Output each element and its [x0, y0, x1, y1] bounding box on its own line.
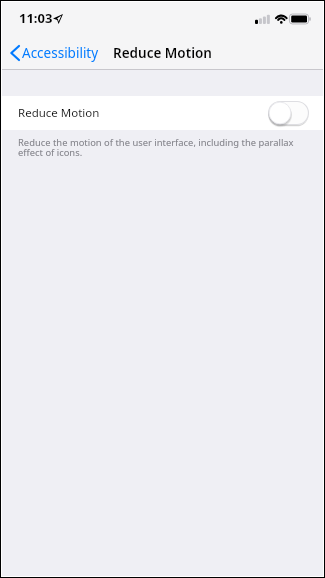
staticText: Reduce Motion: [113, 44, 212, 62]
staticText: Accessibility: [22, 44, 99, 62]
button[interactable]: Accessibility: [2, 39, 109, 67]
staticText: 11:03: [19, 9, 53, 27]
button[interactable]: Reduce Motion toggle, off: [268, 101, 309, 125]
staticText: Reduce the motion of the user interface,…: [18, 136, 313, 159]
button[interactable]: Reduce Motion: [2, 96, 323, 130]
staticText: Reduce Motion: [18, 105, 100, 121]
